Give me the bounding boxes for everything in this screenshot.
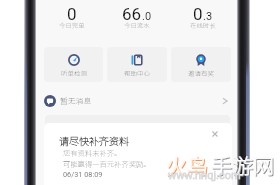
button[interactable]: 0 — [173, 0, 233, 30]
button[interactable]: More messages — [221, 96, 231, 106]
staticText: 66 — [122, 4, 142, 24]
staticText: www.hnqj.com — [168, 169, 241, 182]
staticText: 0 — [67, 4, 77, 24]
staticText: 今日流水 — [124, 21, 150, 30]
staticText: 火鸟 — [167, 151, 209, 181]
staticText: 听单检测 — [61, 68, 87, 77]
staticText: 手游网 — [212, 151, 275, 181]
button[interactable]: 请尽快补齐资料 — [44, 123, 232, 185]
staticText: 0 — [193, 4, 203, 24]
staticText: 手游网 — [211, 150, 274, 180]
button[interactable]: 邀请有奖 — [171, 47, 231, 82]
staticText: 邀请有奖 — [188, 68, 214, 77]
button[interactable]: 听单检测 — [44, 47, 103, 82]
button[interactable]: 暂无消息 — [36, 90, 237, 111]
staticText: .3 — [203, 10, 213, 23]
staticText: .0 — [142, 10, 152, 23]
button[interactable]: 66 — [107, 0, 167, 30]
staticText: 您有资料未补齐。 — [63, 148, 122, 159]
button[interactable]: 0 — [42, 0, 102, 30]
staticText: 可能赢得一百元补齐奖励。 — [63, 159, 151, 170]
button[interactable]: 帮助中心 — [107, 47, 167, 82]
staticText: 暂无消息 — [60, 95, 92, 106]
staticText: 火鸟 — [166, 150, 208, 180]
staticText: 请尽快补齐资料 — [59, 133, 129, 147]
staticText: 在线时长 — [190, 21, 216, 30]
button[interactable]: Close — [209, 128, 221, 140]
staticText: 帮助中心 — [124, 68, 150, 77]
staticText: 今日完单 — [59, 21, 85, 30]
staticText: 06/31 08:09 — [63, 170, 103, 179]
